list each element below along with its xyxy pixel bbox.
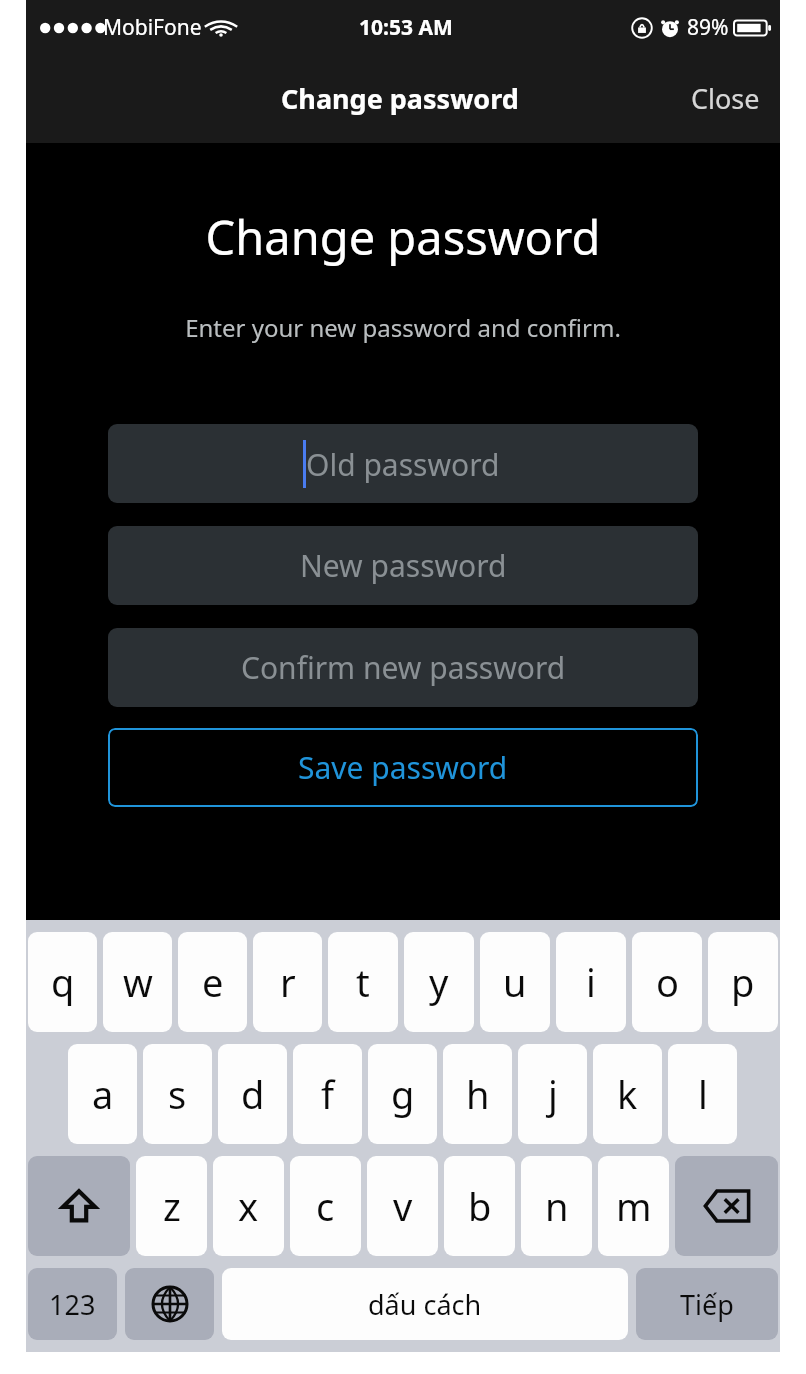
staticText: Change password: [281, 80, 519, 117]
button[interactable]: g: [368, 1044, 437, 1144]
staticText: q: [51, 956, 75, 1008]
staticText: c: [316, 1180, 335, 1232]
staticText: y: [429, 956, 449, 1008]
staticText: m: [616, 1180, 652, 1232]
button[interactable]: z: [136, 1156, 207, 1256]
staticText: t: [356, 956, 370, 1008]
button[interactable]: a: [68, 1044, 137, 1144]
button[interactable]: o: [632, 932, 702, 1032]
staticText: 89%: [687, 13, 729, 42]
button[interactable]: y: [404, 932, 474, 1032]
staticText: x: [238, 1180, 259, 1232]
button[interactable]: h: [443, 1044, 512, 1144]
staticText: New password: [300, 545, 507, 586]
staticText: l: [698, 1068, 708, 1120]
button[interactable]: k: [593, 1044, 662, 1144]
staticText: o: [656, 956, 679, 1008]
button[interactable]: i: [556, 932, 626, 1032]
staticText: d: [241, 1068, 265, 1120]
button[interactable]: e: [178, 932, 247, 1032]
button[interactable]: p: [708, 932, 778, 1032]
staticText: 123: [49, 1286, 96, 1323]
button[interactable]: d: [218, 1044, 287, 1144]
staticText: Old password: [306, 444, 500, 485]
button[interactable]: New password: [108, 526, 698, 605]
staticText: w: [123, 956, 153, 1008]
button[interactable]: x: [213, 1156, 284, 1256]
staticText: Change password: [26, 205, 780, 269]
staticText: u: [503, 956, 527, 1008]
button[interactable]: Save password: [108, 728, 698, 807]
button[interactable]: j: [518, 1044, 587, 1144]
button[interactable]: Confirm new password: [108, 628, 698, 707]
staticText: z: [163, 1180, 181, 1232]
staticText: Close: [691, 80, 760, 117]
button[interactable]: b: [444, 1156, 515, 1256]
button[interactable]: Tiếp: [636, 1268, 778, 1340]
staticText: b: [468, 1180, 492, 1232]
staticText: s: [168, 1068, 187, 1120]
staticText: 10:53 AM: [359, 13, 453, 42]
staticText: Enter your new password and confirm.: [26, 311, 780, 344]
staticText: h: [466, 1068, 490, 1120]
staticText: k: [617, 1068, 638, 1120]
staticText: Save password: [298, 747, 508, 788]
button[interactable]: m: [598, 1156, 669, 1256]
staticText: r: [280, 956, 296, 1008]
button[interactable]: v: [367, 1156, 438, 1256]
staticText: j: [548, 1068, 558, 1120]
button[interactable]: Old password: [108, 424, 698, 503]
staticText: n: [545, 1180, 569, 1232]
staticText: e: [202, 956, 224, 1008]
button[interactable]: n: [521, 1156, 592, 1256]
staticText: MobiFone: [103, 13, 202, 42]
button[interactable]: s: [143, 1044, 212, 1144]
button[interactable]: l: [668, 1044, 737, 1144]
staticText: p: [731, 956, 755, 1008]
staticText: dấu cách: [368, 1286, 482, 1323]
button[interactable]: t: [328, 932, 398, 1032]
button[interactable]: f: [293, 1044, 362, 1144]
button[interactable]: u: [480, 932, 550, 1032]
button[interactable]: Close: [671, 66, 780, 131]
button[interactable]: Shift: [28, 1156, 130, 1256]
staticText: Confirm new password: [241, 647, 566, 688]
staticText: v: [393, 1180, 413, 1232]
staticText: Tiếp: [680, 1286, 734, 1323]
button[interactable]: r: [253, 932, 322, 1032]
button[interactable]: Switch keyboard language: [125, 1268, 214, 1340]
button[interactable]: Backspace: [675, 1156, 778, 1256]
button[interactable]: c: [290, 1156, 361, 1256]
staticText: g: [391, 1068, 415, 1120]
button[interactable]: dấu cách: [222, 1268, 628, 1340]
button[interactable]: 123: [28, 1268, 117, 1340]
button[interactable]: q: [28, 932, 97, 1032]
staticText: i: [586, 956, 596, 1008]
staticText: a: [92, 1068, 114, 1120]
staticText: f: [321, 1068, 335, 1120]
button[interactable]: w: [103, 932, 172, 1032]
